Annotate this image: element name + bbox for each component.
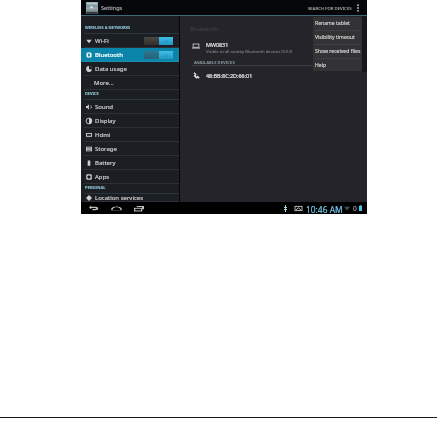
button[interactable]: MW0831: [180, 38, 367, 54]
staticText: Visibility timeout: [315, 34, 355, 41]
staticText: Bluetooth: [95, 51, 123, 59]
button[interactable]: Data usage: [81, 62, 180, 76]
button[interactable]: Show received files: [313, 45, 362, 58]
button[interactable]: Sound: [81, 100, 180, 114]
staticText: Visible to all nearby Bluetooth devices …: [206, 49, 293, 55]
staticText: 0: [353, 204, 357, 213]
staticText: Data usage: [95, 65, 127, 73]
staticText: Rename tablet: [315, 20, 350, 27]
staticText: ON: [163, 39, 169, 44]
staticText: Apps: [95, 173, 110, 181]
staticText: Settings: [101, 4, 123, 12]
button[interactable]: Storage: [81, 142, 180, 156]
staticText: WIRELESS & NETWORKS: [85, 25, 131, 30]
button[interactable]: Battery: [81, 156, 180, 170]
staticText: Sound: [95, 103, 114, 111]
staticText: MW0831: [206, 41, 229, 48]
button[interactable]: Bluetooth: [81, 48, 180, 62]
staticText: Location services: [95, 194, 144, 202]
button[interactable]: SEARCH FOR DEVICES: [305, 1, 355, 15]
button[interactable]: Help: [313, 59, 362, 71]
button[interactable]: Display: [81, 114, 180, 128]
staticText: Battery: [95, 159, 116, 167]
button[interactable]: More options: [353, 0, 363, 16]
staticText: ON: [163, 53, 169, 58]
button[interactable]: Home: [110, 202, 122, 214]
button[interactable]: More...: [81, 76, 180, 90]
button[interactable]: Wi-Fi: [81, 34, 180, 48]
button[interactable]: Back: [88, 202, 100, 214]
button[interactable]: 48:BB:8C:2D:66:01: [180, 68, 367, 81]
staticText: SEARCH FOR DEVICES: [308, 5, 352, 11]
staticText: AVAILABLE DEVICES: [194, 60, 235, 66]
button[interactable]: Hdmi: [81, 128, 180, 142]
staticText: Hdmi: [95, 131, 111, 139]
staticText: DEVICE: [85, 91, 99, 96]
staticText: More...: [94, 79, 114, 87]
staticText: Display: [95, 117, 116, 125]
staticText: Storage: [95, 145, 117, 153]
staticText: Bluetooth: [190, 25, 218, 33]
button[interactable]: Recent apps: [133, 202, 145, 214]
staticText: 10:46 AM: [306, 204, 343, 215]
button[interactable]: Rename tablet: [313, 17, 362, 30]
button[interactable]: Apps: [81, 170, 180, 184]
staticText: Help: [315, 62, 327, 69]
button[interactable]: Visibility timeout: [313, 31, 362, 44]
staticText: Show received files: [315, 48, 361, 55]
staticText: PERSONAL: [85, 185, 106, 190]
staticText: Wi-Fi: [95, 37, 109, 45]
button[interactable]: Location services: [81, 194, 180, 202]
staticText: 48:BB:8C:2D:66:01: [206, 72, 253, 79]
